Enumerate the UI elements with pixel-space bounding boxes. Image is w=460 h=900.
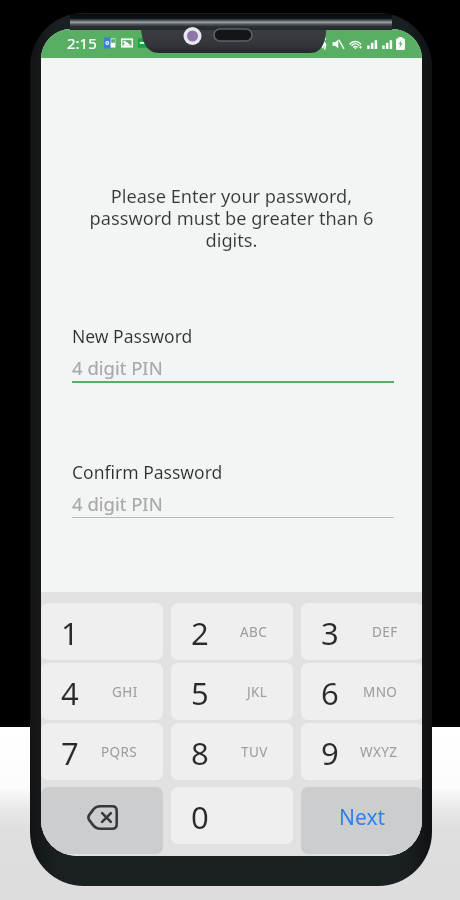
button[interactable]: Next bbox=[301, 787, 422, 854]
button[interactable]: 4 bbox=[41, 663, 163, 720]
button[interactable]: 2 bbox=[171, 603, 293, 660]
staticText: 9 bbox=[321, 732, 339, 774]
staticText: DEF bbox=[372, 623, 398, 641]
button[interactable]: 9 bbox=[301, 723, 422, 780]
staticText: PQRS bbox=[101, 743, 138, 761]
staticText: JKL bbox=[247, 683, 268, 701]
staticText: Please Enter your password, bbox=[41, 184, 422, 209]
staticText: digits. bbox=[41, 228, 422, 253]
staticText: 4 digit PIN bbox=[72, 491, 163, 516]
staticText: Confirm Password bbox=[72, 460, 223, 484]
staticText: Next bbox=[339, 803, 386, 832]
staticText: 3 bbox=[321, 612, 339, 654]
button[interactable]: 3 bbox=[301, 603, 422, 660]
staticText: 6 bbox=[321, 672, 339, 714]
staticText: 7 bbox=[61, 732, 79, 774]
staticText: 0 bbox=[191, 796, 209, 838]
staticText: 4 bbox=[61, 672, 79, 714]
staticText: 2 bbox=[191, 612, 209, 654]
button[interactable]: 0 bbox=[171, 787, 293, 844]
button[interactable]: 8 bbox=[171, 723, 293, 780]
staticText: MNO bbox=[363, 683, 398, 701]
staticText: 1 bbox=[61, 612, 79, 654]
button[interactable]: 6 bbox=[301, 663, 422, 720]
staticText: 8 bbox=[191, 732, 209, 774]
button[interactable]: Backspace bbox=[41, 787, 163, 854]
button[interactable]: 1 bbox=[41, 603, 163, 660]
staticText: password must be greater than 6 bbox=[41, 206, 422, 231]
staticText: 5 bbox=[191, 672, 209, 714]
staticText: 2:15 bbox=[67, 33, 97, 53]
button[interactable]: 7 bbox=[41, 723, 163, 780]
staticText: 4 digit PIN bbox=[72, 355, 163, 380]
staticText: GHI bbox=[112, 683, 138, 701]
button[interactable]: 5 bbox=[171, 663, 293, 720]
staticText: TUV bbox=[241, 743, 268, 761]
staticText: New Password bbox=[72, 324, 193, 348]
staticText: WXYZ bbox=[360, 743, 398, 761]
staticText: ABC bbox=[240, 623, 268, 641]
